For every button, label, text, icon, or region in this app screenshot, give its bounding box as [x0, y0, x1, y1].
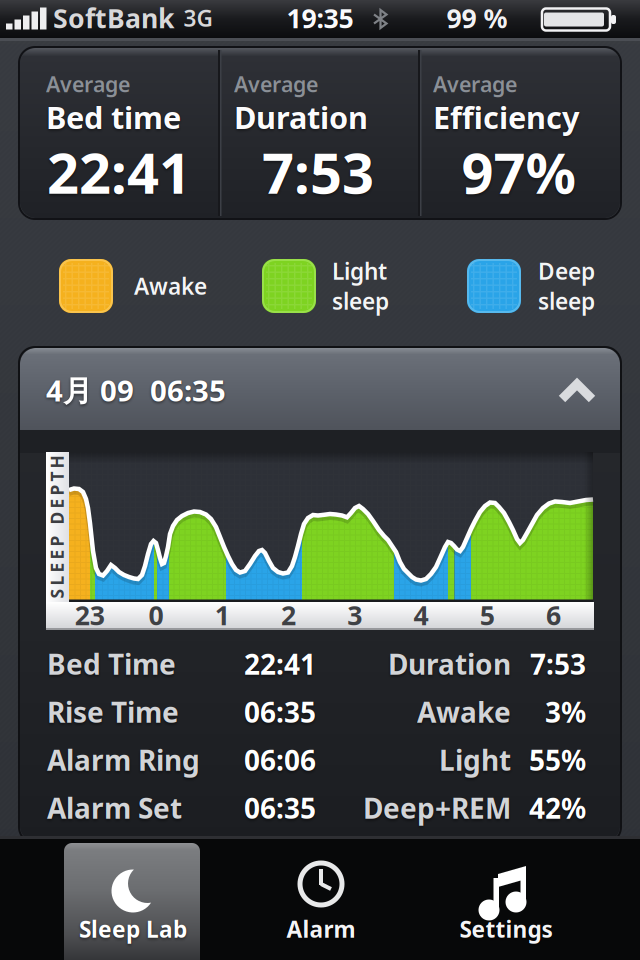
- staticText: 22:41: [47, 135, 191, 209]
- staticText: Alarm Set: [47, 789, 182, 827]
- staticText: 06:35: [150, 370, 226, 409]
- staticText: Deep: [538, 256, 595, 286]
- staticText: 06:06: [244, 741, 316, 779]
- staticText: Bed time: [46, 97, 181, 137]
- staticText: Light: [439, 741, 511, 779]
- staticText: Light: [332, 256, 387, 286]
- staticText: 23: [75, 597, 105, 633]
- staticText: 5: [480, 597, 495, 633]
- staticText: Alarm: [286, 914, 355, 944]
- staticText: 0: [148, 597, 163, 633]
- staticText: Rise Time: [47, 693, 179, 731]
- staticText: Alarm Ring: [47, 741, 200, 779]
- staticText: Average: [433, 70, 517, 98]
- staticText: Bed Time: [47, 645, 176, 683]
- staticText: Settings: [459, 914, 552, 944]
- button[interactable]: 4月 09: [20, 348, 620, 430]
- staticText: SoftBank: [53, 0, 175, 36]
- staticText: 3G: [183, 3, 212, 33]
- staticText: Average: [46, 70, 130, 98]
- staticText: 06:35: [244, 789, 316, 827]
- staticText: 4月 09: [46, 370, 134, 409]
- staticText: 22:41: [244, 645, 316, 683]
- staticText: Efficiency: [433, 97, 580, 137]
- staticText: 7:53: [262, 135, 374, 209]
- staticText: 2: [281, 597, 296, 633]
- staticText: 42%: [529, 789, 586, 827]
- staticText: 55%: [529, 741, 586, 779]
- staticText: 1: [215, 597, 230, 633]
- staticText: 97%: [461, 135, 576, 209]
- staticText: 06:35: [244, 693, 316, 731]
- staticText: 7:53: [530, 645, 586, 683]
- staticText: 3%: [545, 693, 586, 731]
- button[interactable]: Sleep Lab: [64, 843, 200, 960]
- staticText: Duration: [388, 645, 511, 683]
- staticText: sleep: [332, 286, 389, 316]
- staticText: 4: [413, 597, 428, 633]
- staticText: Awake: [134, 271, 207, 301]
- staticText: sleep: [538, 286, 595, 316]
- staticText: Deep+REM: [363, 789, 511, 827]
- staticText: Duration: [234, 97, 368, 137]
- staticText: 19:35: [286, 0, 353, 36]
- staticText: 6: [546, 597, 561, 633]
- staticText: S L E E P D E P T H: [0, 515, 128, 538]
- button[interactable]: Settings: [431, 843, 581, 960]
- staticText: 3: [347, 597, 362, 633]
- staticText: Sleep Lab: [79, 914, 187, 944]
- staticText: 99 %: [446, 0, 507, 36]
- staticText: Average: [234, 70, 318, 98]
- button[interactable]: Alarm: [246, 843, 396, 960]
- staticText: Awake: [417, 693, 511, 731]
